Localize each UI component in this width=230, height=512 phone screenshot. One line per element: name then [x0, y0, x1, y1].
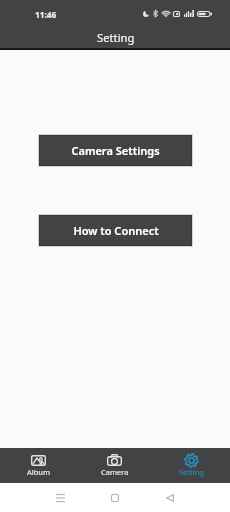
staticText: Setting [179, 467, 204, 477]
staticText: Camera Settings [71, 143, 160, 158]
button[interactable]: Camera Settings [39, 135, 192, 166]
button[interactable]: How to Connect [39, 215, 192, 246]
button[interactable]: Recent apps [48, 486, 72, 510]
staticText: Setting [97, 30, 135, 45]
button[interactable]: Home [103, 486, 127, 510]
button[interactable]: Setting [153, 448, 230, 483]
button[interactable]: Camera [76, 448, 153, 483]
staticText: Camera [101, 467, 129, 477]
button[interactable]: Back [158, 486, 182, 510]
staticText: How to Connect [73, 223, 159, 238]
staticText: Album [27, 467, 50, 477]
staticText: 11:46 [35, 9, 57, 20]
button[interactable]: Album [0, 448, 76, 483]
